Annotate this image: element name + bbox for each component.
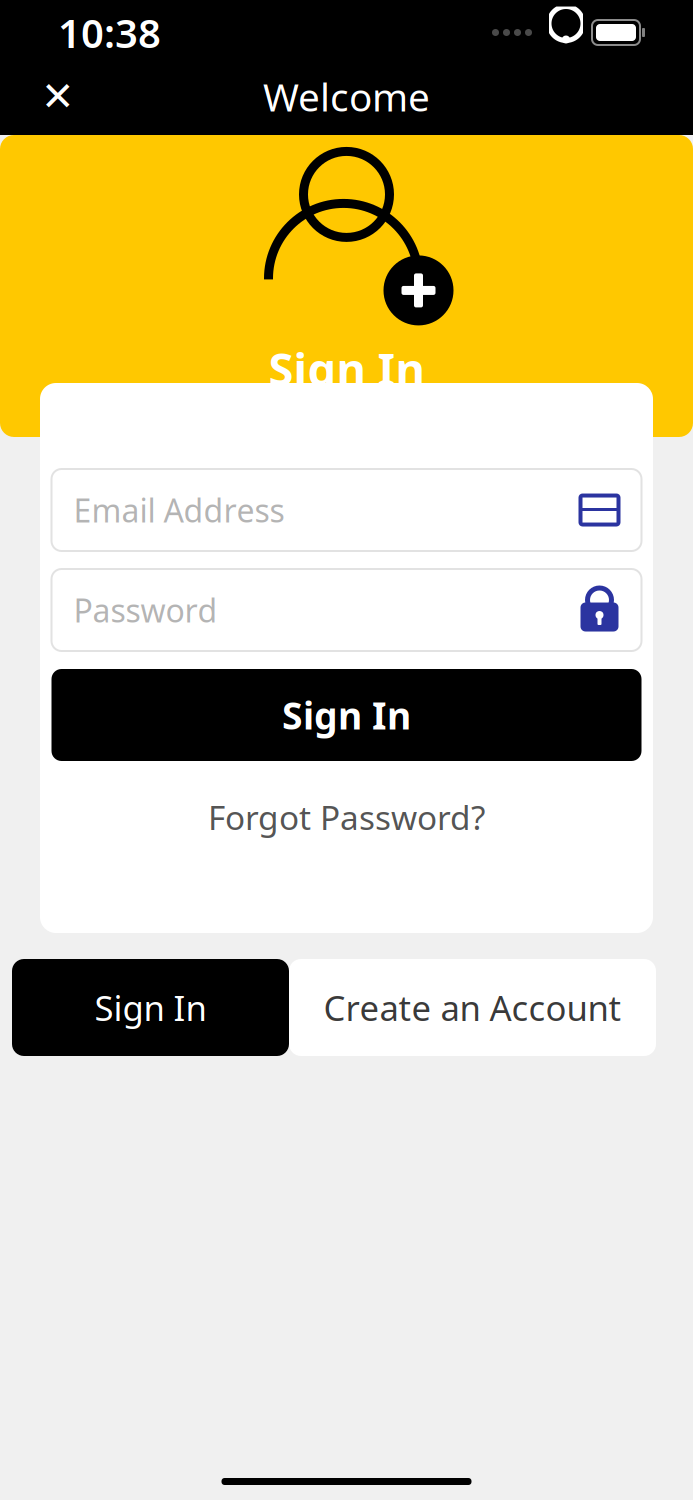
- button[interactable]: Forgot Password?: [188, 783, 505, 851]
- staticText: 10:38: [58, 6, 161, 59]
- button[interactable]: Password: [51, 569, 641, 651]
- staticText: Password: [73, 589, 217, 631]
- staticText: Email Address: [73, 489, 284, 531]
- staticText: ✕: [41, 74, 75, 119]
- staticText: Sign In: [268, 338, 424, 399]
- staticText: Forgot Password?: [208, 795, 485, 839]
- staticText: Sign In: [282, 690, 411, 740]
- button[interactable]: Sign In: [12, 959, 289, 1056]
- button[interactable]: Sign In: [51, 669, 641, 761]
- staticText: Welcome: [263, 71, 430, 122]
- button[interactable]: Email Address: [51, 469, 641, 551]
- button[interactable]: Close: [27, 65, 89, 127]
- staticText: Create an Account: [323, 984, 621, 1030]
- button[interactable]: Create an Account: [289, 959, 656, 1056]
- staticText: Sign In: [94, 984, 206, 1030]
